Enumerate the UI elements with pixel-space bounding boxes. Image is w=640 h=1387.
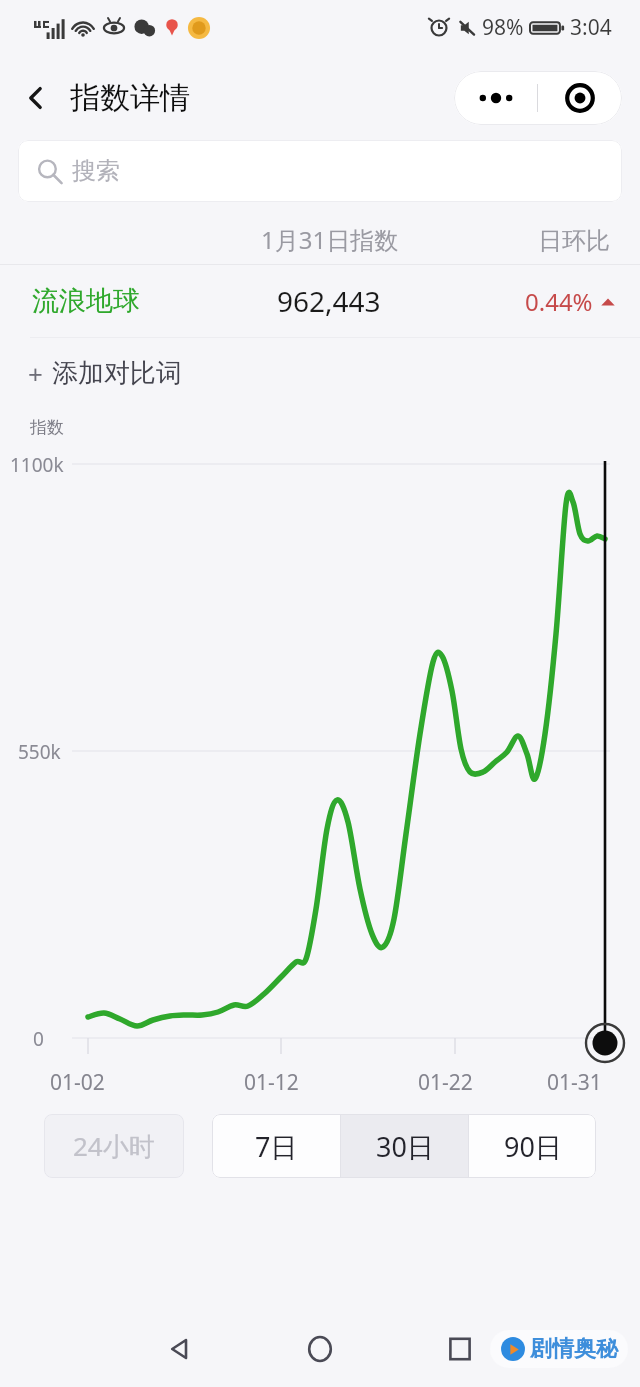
button[interactable]: 24小时	[44, 1114, 184, 1178]
staticText: 搜索	[72, 156, 120, 186]
button[interactable]: +	[28, 356, 182, 391]
staticText: 3:04	[570, 13, 612, 42]
staticText: 指数详情	[70, 79, 190, 117]
staticText: 1100k	[10, 452, 64, 478]
staticText: 30日	[376, 1128, 434, 1165]
staticText: 7日	[255, 1128, 298, 1165]
staticText: 0	[33, 1026, 44, 1052]
staticText: 24小时	[73, 1128, 155, 1164]
staticText: 01-02	[50, 1068, 105, 1097]
button[interactable]: More	[454, 71, 537, 125]
staticText: 01-22	[418, 1068, 473, 1097]
button[interactable]: Recents	[430, 1319, 490, 1379]
button[interactable]: Close	[538, 71, 622, 125]
staticText: 日环比	[538, 226, 610, 256]
button[interactable]: 30日	[341, 1114, 468, 1178]
staticText: 0.44%	[525, 285, 593, 318]
staticText: 01-12	[244, 1068, 299, 1097]
staticText: 90日	[504, 1128, 562, 1165]
staticText: 剧情奥秘	[530, 1335, 618, 1363]
staticText: 添加对比词	[52, 357, 182, 390]
staticText: 01-31	[547, 1068, 602, 1097]
button[interactable]: Back	[150, 1319, 210, 1379]
staticText: 550k	[18, 739, 61, 765]
button[interactable]: 流浪地球	[0, 265, 640, 337]
staticText: 1月31日指数	[261, 223, 399, 256]
button[interactable]: Back	[14, 76, 58, 120]
staticText: 962,443	[277, 282, 381, 320]
staticText: 指数	[30, 417, 64, 438]
button[interactable]: 90日	[469, 1114, 596, 1178]
staticText: +	[28, 356, 43, 391]
staticText: 98%	[482, 13, 524, 42]
button[interactable]: 7日	[212, 1114, 340, 1178]
staticText: 流浪地球	[32, 284, 140, 318]
button[interactable]: 搜索	[18, 140, 622, 202]
button[interactable]: Home	[290, 1319, 350, 1379]
